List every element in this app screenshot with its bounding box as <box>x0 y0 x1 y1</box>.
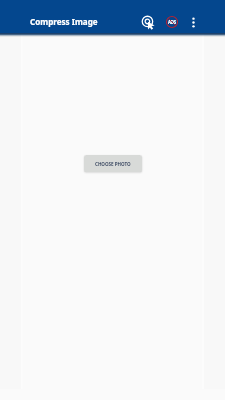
button[interactable]: More options <box>183 12 203 32</box>
button[interactable]: CHOOSE PHOTO <box>84 155 142 172</box>
staticText: CHOOSE PHOTO <box>95 161 131 167</box>
button[interactable]: Select area <box>138 12 158 32</box>
staticText: ADS <box>168 19 177 25</box>
button[interactable]: Remove ads <box>162 12 182 32</box>
staticText: Compress Image <box>30 16 98 27</box>
